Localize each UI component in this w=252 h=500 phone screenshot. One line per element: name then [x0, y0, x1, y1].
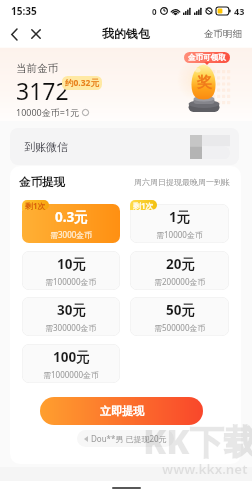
staticText: 43 [234, 5, 245, 17]
button[interactable]: Close [25, 23, 47, 45]
staticText: 50元 [166, 301, 195, 319]
staticText: 30元 [57, 301, 86, 319]
staticText: 1元 [169, 208, 191, 226]
staticText: 立即提现 [100, 404, 144, 418]
staticText: 当前金币 [16, 62, 58, 75]
staticText: 剩1次 [25, 200, 46, 210]
button[interactable]: 50元 [130, 297, 229, 336]
staticText: 需1000000金币 [43, 369, 100, 380]
staticText: 到账微信 [24, 140, 68, 154]
staticText: www.kkx.net [162, 460, 248, 478]
button[interactable]: 金币可领取 [184, 52, 230, 63]
button[interactable]: 1元 [130, 204, 229, 243]
button[interactable]: 金币明细 [194, 22, 252, 45]
staticText: 金币可领取 [188, 53, 226, 62]
staticText: 周六周日提现最晚周一到账 [134, 177, 230, 187]
staticText: 3172 [16, 75, 69, 106]
staticText: 剩1次 [133, 200, 154, 210]
staticText: Dou**男 已提现20元 [91, 433, 167, 444]
staticText: 0.3元 [55, 208, 88, 226]
button[interactable]: 到账微信 [10, 128, 239, 165]
staticText: 100元 [53, 348, 90, 366]
staticText: 需300000金币 [45, 322, 97, 333]
staticText: 奖 [197, 73, 212, 92]
staticText: 15:35 [11, 4, 37, 18]
staticText: 20元 [166, 255, 195, 273]
button[interactable]: 立即提现 [40, 397, 203, 425]
staticText: 约0.32元 [65, 77, 99, 89]
staticText: 10元 [57, 255, 86, 273]
staticText: 需500000金币 [154, 322, 206, 333]
staticText: 需3000金币 [50, 229, 93, 240]
button[interactable]: 30元 [22, 297, 120, 336]
staticText: 需10000金币 [156, 229, 203, 240]
staticText: 需100000金币 [45, 276, 97, 287]
button[interactable]: 10元 [22, 251, 120, 290]
staticText: 金币明细 [204, 28, 242, 40]
button[interactable]: Back [3, 23, 25, 45]
button[interactable]: 20元 [130, 251, 229, 290]
staticText: 0 [152, 6, 157, 17]
staticText: 10000金币=1元 [16, 106, 80, 118]
staticText: 需200000金币 [154, 276, 206, 287]
button[interactable]: 100元 [22, 344, 120, 383]
button[interactable]: 0.3元 [22, 204, 120, 243]
staticText: KK下载 [143, 418, 252, 464]
staticText: 金币提现 [19, 175, 65, 189]
staticText: 我的钱包 [102, 26, 150, 41]
